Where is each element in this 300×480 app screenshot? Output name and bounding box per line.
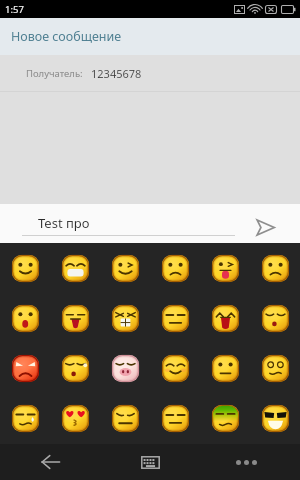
button[interactable]: Sleepy face — [250, 293, 300, 343]
button[interactable]: Winking face with tongue — [200, 243, 250, 293]
button[interactable]: Face with tongue out — [50, 293, 100, 343]
button[interactable]: Loudly crying face — [200, 293, 250, 343]
button[interactable]: Face with clenched teeth — [100, 293, 150, 343]
button[interactable]: More options — [200, 444, 300, 480]
staticText: Новое сообщение — [11, 28, 122, 45]
button[interactable]: Neutral face — [200, 343, 250, 393]
button[interactable]: Face blowing a kiss — [50, 393, 100, 443]
staticText: Получатель: — [26, 67, 83, 80]
button[interactable]: Smiling face — [0, 243, 50, 293]
button[interactable]: Send — [248, 212, 282, 243]
button[interactable]: Face with open mouth — [0, 293, 50, 343]
button[interactable]: Expressionless face — [150, 393, 200, 443]
button[interactable]: Snoring face — [50, 343, 100, 393]
button[interactable]: Expressionless face — [150, 293, 200, 343]
button[interactable]: Blushing smiling face — [150, 343, 200, 393]
button[interactable]: Frowning face — [150, 243, 200, 293]
staticText: Test про — [38, 214, 90, 232]
button[interactable]: Back — [0, 444, 100, 480]
button[interactable]: Pig face — [100, 343, 150, 393]
button[interactable]: Keyboard — [100, 444, 200, 480]
button[interactable]: Sleeping face — [0, 393, 50, 443]
button[interactable]: Confused face — [250, 343, 300, 393]
button[interactable]: Frowning face — [250, 243, 300, 293]
staticText: 12345678 — [91, 66, 142, 81]
button[interactable]: Nauseated face — [200, 393, 250, 443]
button[interactable]: Disappointed face — [100, 393, 150, 443]
button[interactable]: Test про — [22, 214, 235, 236]
staticText: 1:57 — [5, 3, 24, 16]
button[interactable]: Grinning face — [50, 243, 100, 293]
button[interactable]: Получатель: — [0, 55, 300, 91]
button[interactable]: Smiling face with sunglasses — [250, 393, 300, 443]
button[interactable]: Winking face — [100, 243, 150, 293]
button[interactable]: Angry face — [0, 343, 50, 393]
button[interactable]: Новое сообщение — [0, 18, 300, 55]
